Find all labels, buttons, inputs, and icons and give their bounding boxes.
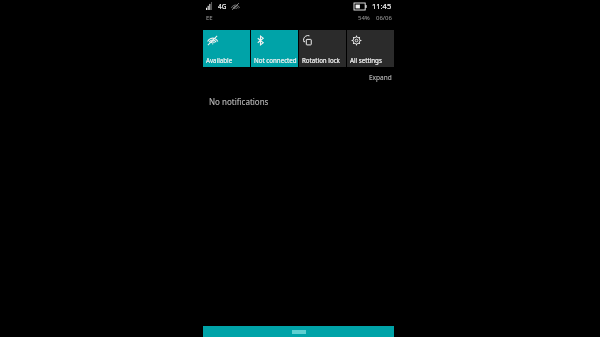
button[interactable]: Expand [367,72,394,83]
button[interactable]: Navigation bar [203,326,394,337]
staticText: 11:45 [372,1,392,11]
staticText: Not connected [254,56,297,64]
staticText: Rotation lock [302,56,340,64]
staticText: 4G [218,2,227,11]
button[interactable]: All settings [347,30,394,67]
button[interactable]: Bluetooth [251,30,298,67]
button[interactable]: Wi-Fi [203,30,250,67]
staticText: No notifications [209,96,269,107]
staticText: EE [206,14,213,22]
staticText: 54% [358,14,370,22]
staticText: Expand [369,73,392,82]
staticText: All settings [350,56,382,64]
staticText: 06/06 [376,14,392,22]
staticText: Available [206,56,233,64]
button[interactable]: Rotation lock [299,30,346,67]
